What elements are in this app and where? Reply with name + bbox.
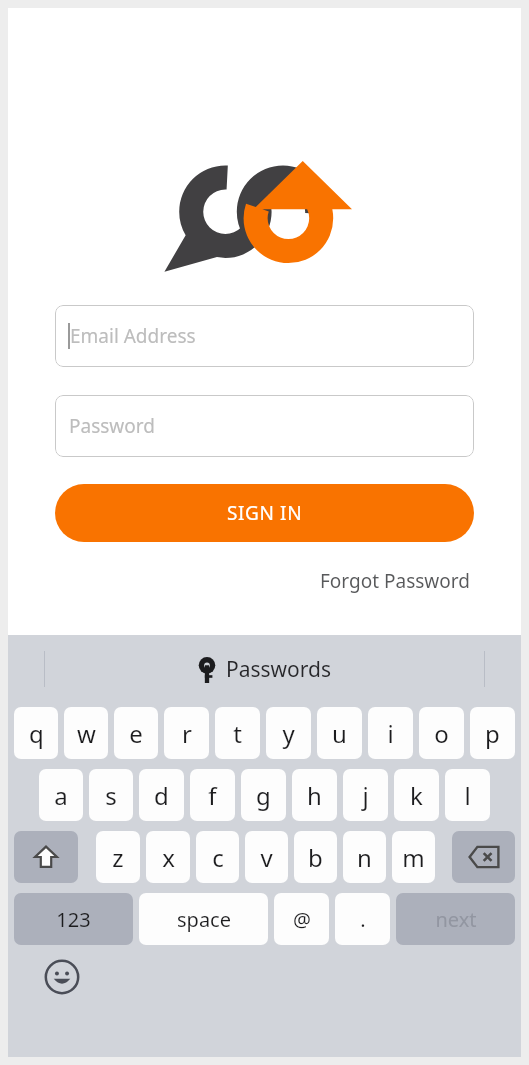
staticText: w [77,717,96,750]
button[interactable]: Email Address [55,305,474,367]
button[interactable]: next [396,893,515,945]
staticText: q [29,717,44,750]
staticText: h [307,779,322,812]
button[interactable]: v [245,831,288,883]
button[interactable]: x [146,831,190,883]
staticText: Forgot Password [320,568,470,594]
staticText: d [154,779,169,812]
button[interactable]: b [294,831,337,883]
button[interactable]: Passwords [188,649,342,690]
staticText: n [357,841,372,874]
staticText: a [54,779,68,812]
staticText: Password [69,413,155,439]
button[interactable]: y [266,707,311,759]
button[interactable]: space [139,893,268,945]
staticText: x [162,841,175,874]
staticText: . [360,906,366,933]
staticText: z [112,841,124,874]
button[interactable]: w [64,707,108,759]
staticText: k [410,779,423,812]
staticText: SIGN IN [227,500,303,526]
staticText: v [260,841,273,874]
button[interactable]: SIGN IN [55,484,474,542]
button[interactable]: 123 [14,893,133,945]
staticText: Passwords [226,655,332,684]
staticText: e [129,717,143,750]
button[interactable]: d [139,769,184,821]
button[interactable]: l [445,769,490,821]
staticText: next [435,906,477,933]
button[interactable]: g [241,769,286,821]
staticText: m [402,841,425,874]
staticText: s [105,779,117,812]
button[interactable]: m [392,831,435,883]
staticText: l [464,779,471,812]
button[interactable]: . [335,893,390,945]
staticText: b [308,841,323,874]
staticText: u [332,717,347,750]
button[interactable]: e [114,707,158,759]
button[interactable]: c [196,831,239,883]
button[interactable]: t [215,707,260,759]
button[interactable]: o [419,707,464,759]
button[interactable]: s [89,769,133,821]
staticText: p [485,717,500,750]
staticText: j [362,779,369,812]
staticText: y [282,717,295,750]
button[interactable]: u [317,707,362,759]
button[interactable]: r [164,707,209,759]
button[interactable]: Shift [14,831,78,883]
staticText: 123 [56,906,91,933]
button[interactable]: q [14,707,58,759]
button[interactable]: p [470,707,515,759]
button[interactable]: f [190,769,235,821]
button[interactable]: Forgot Password [316,564,474,598]
staticText: t [233,717,242,750]
staticText: f [208,779,217,812]
staticText: c [212,841,224,874]
staticText: Email Address [70,323,196,349]
button[interactable]: k [394,769,439,821]
button[interactable]: a [39,769,83,821]
staticText: r [182,717,192,750]
staticText: o [434,717,449,750]
button[interactable]: j [343,769,388,821]
button[interactable]: Backspace [452,831,515,883]
staticText: i [387,717,394,750]
staticText: g [256,779,271,812]
button[interactable]: @ [274,893,329,945]
button[interactable]: z [96,831,140,883]
button[interactable]: Password [55,395,474,457]
button[interactable]: Emoji [44,959,80,995]
staticText: space [177,906,231,933]
button[interactable]: n [343,831,386,883]
button[interactable]: i [368,707,413,759]
button[interactable]: h [292,769,337,821]
staticText: @ [293,906,311,933]
